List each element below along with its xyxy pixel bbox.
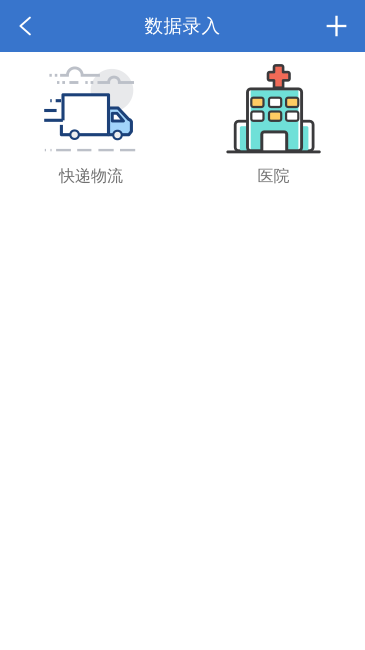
staticText: 数据录入 xyxy=(144,14,220,37)
button[interactable]: 医院 xyxy=(182,52,365,182)
staticText: 医院 xyxy=(257,166,289,186)
button[interactable]: Add xyxy=(312,1,360,51)
button[interactable]: Back xyxy=(1,1,49,51)
button[interactable]: 快递物流 xyxy=(0,52,182,182)
staticText: 快递物流 xyxy=(59,166,123,186)
